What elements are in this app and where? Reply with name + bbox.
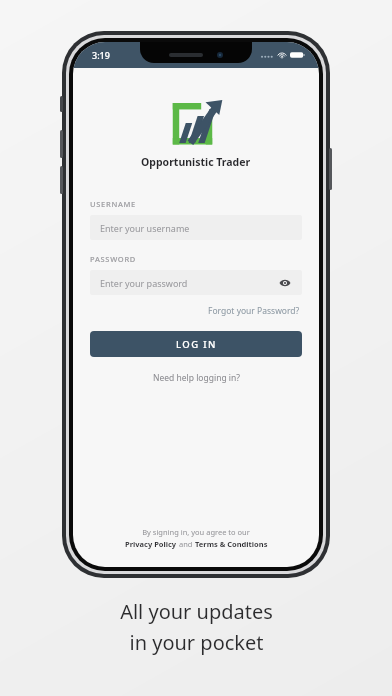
staticText: and bbox=[177, 539, 195, 549]
button[interactable]: Enter your password bbox=[90, 270, 302, 295]
button[interactable]: Forgot your Password? bbox=[206, 303, 302, 319]
staticText: in your pocket bbox=[129, 629, 264, 656]
button[interactable]: Privacy Policy bbox=[125, 539, 177, 549]
button[interactable]: Need help logging in? bbox=[150, 370, 243, 386]
button[interactable]: Show password bbox=[278, 276, 292, 290]
button[interactable]: Enter your username bbox=[90, 215, 302, 240]
staticText: All your updates bbox=[120, 598, 273, 625]
staticText: Opportunistic Trader bbox=[141, 155, 251, 169]
staticText: Enter your password bbox=[100, 277, 278, 289]
staticText: Enter your username bbox=[100, 222, 292, 234]
staticText: PASSWORD bbox=[90, 254, 137, 264]
button[interactable]: LOG IN bbox=[90, 331, 302, 357]
button[interactable]: Terms & Conditions bbox=[195, 539, 268, 549]
staticText: USERNAME bbox=[90, 199, 136, 209]
staticText: By signing in, you agree to our bbox=[142, 527, 250, 537]
staticText: LOG IN bbox=[176, 338, 217, 351]
staticText: 3:19 bbox=[92, 49, 110, 61]
